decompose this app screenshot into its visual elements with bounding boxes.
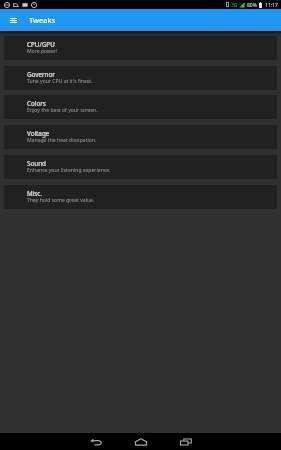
- button[interactable]: Colors: [4, 95, 277, 119]
- staticText: Misc.: [27, 189, 43, 198]
- staticText: Governor: [27, 70, 55, 79]
- staticText: Sound: [27, 159, 46, 168]
- staticText: 80%: [247, 2, 257, 9]
- button[interactable]: Sound: [4, 155, 277, 179]
- staticText: Tweaks: [29, 15, 56, 25]
- staticText: 3G: [231, 2, 238, 9]
- staticText: Manage the heat dissipation.: [27, 137, 97, 144]
- button[interactable]: Voltage: [4, 125, 277, 149]
- staticText: Voltage: [27, 129, 50, 138]
- staticText: Enhance your listening experience.: [27, 167, 111, 174]
- button[interactable]: Governor: [4, 66, 277, 90]
- button[interactable]: Recent apps: [167, 433, 202, 450]
- staticText: Enjoy the best of your screen.: [27, 107, 98, 114]
- button[interactable]: Misc.: [4, 185, 277, 209]
- button[interactable]: CPU/GPU: [4, 36, 277, 60]
- staticText: CPU/GPU: [27, 40, 55, 49]
- staticText: More power!: [27, 48, 58, 55]
- button[interactable]: Back: [77, 433, 112, 450]
- button[interactable]: Home: [123, 433, 158, 450]
- staticText: 11:17: [265, 2, 278, 9]
- staticText: Colors: [27, 99, 46, 108]
- button[interactable]: Open navigation menu: [0, 9, 26, 31]
- staticText: They hold some great value.: [27, 197, 95, 204]
- staticText: Tune your CPU at it's finest.: [27, 78, 93, 85]
